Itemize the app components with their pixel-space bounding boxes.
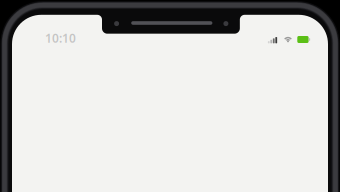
- staticText: 10:10: [45, 30, 76, 46]
